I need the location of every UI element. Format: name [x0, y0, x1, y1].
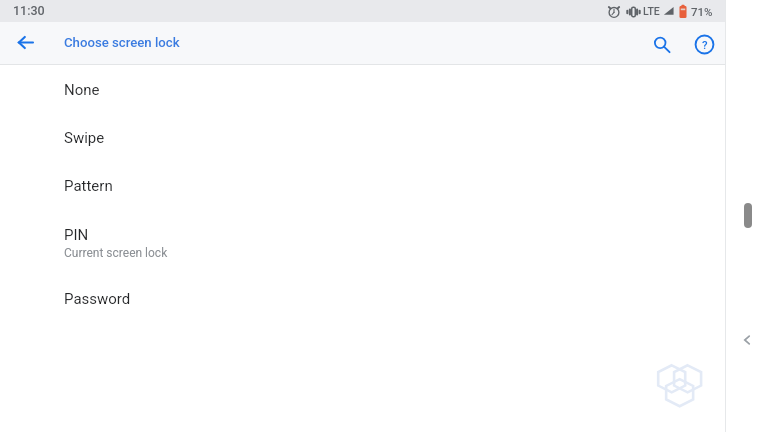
button[interactable]: Swipe [0, 114, 725, 162]
button[interactable]: Back gesture [740, 333, 754, 347]
staticText: Pattern [64, 177, 113, 195]
button[interactable]: Password [0, 275, 725, 323]
staticText: Swipe [64, 129, 105, 147]
staticText: Choose screen lock [64, 35, 180, 50]
button[interactable]: Help [683, 22, 725, 65]
button[interactable]: Search [641, 22, 683, 65]
staticText: Current screen lock [64, 246, 168, 260]
staticText: Password [64, 290, 131, 308]
button[interactable]: Pattern [0, 162, 725, 210]
staticText: 11:30 [13, 3, 45, 18]
staticText: None [64, 81, 100, 99]
staticText: LTE [643, 5, 660, 17]
staticText: ? [702, 38, 708, 51]
staticText: PIN [64, 226, 89, 244]
button[interactable]: PIN [0, 210, 725, 275]
staticText: 71% [691, 5, 713, 18]
button[interactable]: Back [0, 22, 50, 65]
button[interactable]: None [0, 66, 725, 114]
